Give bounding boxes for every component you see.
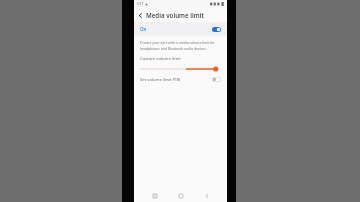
button[interactable]: Toggle off [212, 77, 221, 82]
button[interactable]: Recents [149, 190, 160, 201]
staticText: Media volume limit [146, 11, 204, 19]
staticText: On [140, 26, 147, 32]
button[interactable]: Custom volume limit slider [140, 65, 221, 73]
button[interactable]: Home [175, 190, 186, 201]
button[interactable]: Back [201, 190, 212, 201]
button[interactable]: Navigate up [134, 9, 146, 21]
staticText: Custom volume limit [140, 56, 181, 62]
staticText: 5:17 [137, 2, 144, 6]
staticText: headphones and Bluetooth audio devices. [140, 46, 207, 51]
button[interactable]: Toggle on [212, 27, 221, 32]
button[interactable]: On [134, 22, 227, 36]
staticText: Set volume limit PIN [140, 77, 180, 83]
staticText: Protect your ears with a media volume li… [140, 40, 215, 45]
button[interactable]: Set volume limit PIN [134, 73, 227, 86]
